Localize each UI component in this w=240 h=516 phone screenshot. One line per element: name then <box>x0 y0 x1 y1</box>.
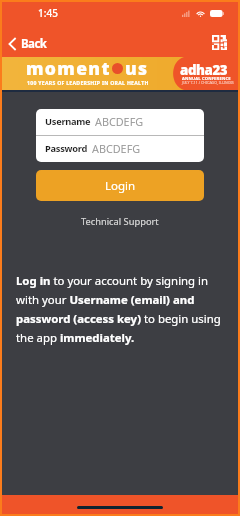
staticText: 1:45 <box>38 6 58 20</box>
button[interactable]: Login <box>36 170 204 201</box>
staticText: ABCDEFG <box>92 141 141 156</box>
button[interactable]: Username <box>36 109 204 135</box>
staticText: ANNUAL CONFERENCE <box>182 76 231 82</box>
button[interactable]: Scan QR code <box>210 33 228 51</box>
staticText: moment <box>26 56 111 80</box>
button[interactable]: Password <box>36 136 204 162</box>
staticText: JULY 7-11 / CHICAGO, ILLINOIS <box>182 80 234 85</box>
staticText: Username <box>45 115 91 128</box>
staticText: 100 YEARS OF LEADERSHIP IN ORAL HEALTH <box>27 79 149 86</box>
staticText: Password <box>45 142 88 155</box>
staticText: Login <box>105 178 136 194</box>
staticText: Technical Support <box>81 215 159 228</box>
staticText: adha23 <box>180 61 228 79</box>
staticText: ABCDEFG <box>95 114 144 129</box>
staticText: Log in to your account by signing in wit… <box>16 273 230 345</box>
button[interactable]: Technical Support <box>75 212 165 231</box>
staticText: us <box>125 56 149 80</box>
button[interactable]: Back <box>2 33 55 55</box>
staticText: Back <box>21 36 47 52</box>
